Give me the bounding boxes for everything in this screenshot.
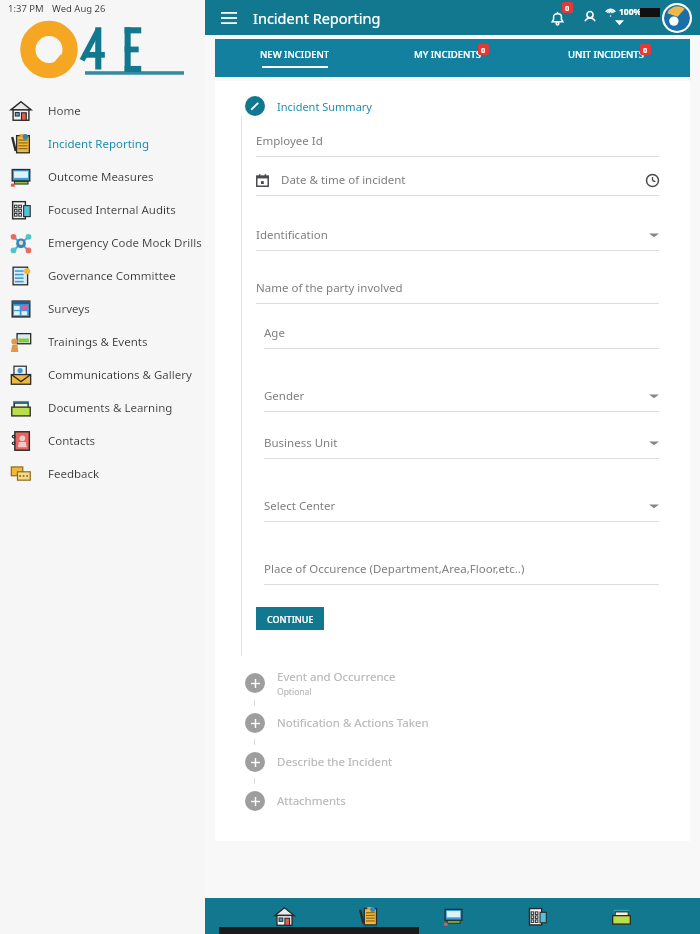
staticText: Place of Occurence (Department,Area,Floo…: [264, 561, 525, 577]
button[interactable]: Emergency Code Mock Drills: [0, 226, 205, 259]
staticText: Name of the party involved: [256, 280, 403, 296]
staticText: Select Center: [264, 498, 336, 514]
button[interactable]: Attachments: [226, 784, 677, 817]
button[interactable]: Notification & Actions Taken: [226, 706, 677, 739]
button[interactable]: Surveys: [0, 292, 205, 325]
button[interactable]: UNIT INCIDENTS: [532, 39, 690, 77]
staticText: NEW INCIDENT: [260, 48, 330, 61]
button[interactable]: Trainings & Events: [0, 325, 205, 358]
staticText: 0: [565, 3, 570, 13]
button[interactable]: Gender: [264, 385, 659, 412]
button[interactable]: Place of Occurence (Department,Area,Floo…: [264, 558, 659, 585]
staticText: Governance Committee: [48, 268, 176, 284]
button[interactable]: Home: [0, 94, 205, 127]
staticText: 100%: [619, 6, 642, 18]
staticText: Outcome Measures: [48, 169, 154, 185]
button[interactable]: Age: [264, 322, 659, 349]
button[interactable]: Focused Internal Audits: [520, 899, 554, 933]
staticText: Identification: [256, 227, 328, 243]
staticText: Attachments: [277, 793, 346, 809]
staticText: Home: [48, 103, 81, 119]
staticText: Documents & Learning: [48, 400, 173, 416]
staticText: Contacts: [48, 433, 96, 449]
staticText: Incident Reporting: [48, 136, 150, 152]
button[interactable]: Communications & Gallery: [0, 358, 205, 391]
staticText: Surveys: [48, 301, 90, 317]
staticText: 1:37 PM: [8, 2, 44, 15]
button[interactable]: Select Center: [264, 495, 659, 522]
staticText: 0: [643, 45, 648, 55]
staticText: Wed Aug 26: [52, 2, 106, 15]
staticText: Feedback: [48, 466, 100, 482]
staticText: Optional: [277, 686, 312, 698]
button[interactable]: Describe the Incident: [226, 745, 677, 778]
staticText: Business Unit: [264, 435, 338, 451]
staticText: Gender: [264, 388, 305, 404]
button[interactable]: Feedback: [0, 457, 205, 490]
button[interactable]: Notifications: [543, 4, 571, 32]
button[interactable]: Account: [577, 5, 603, 31]
button[interactable]: Event and Occurrence: [226, 666, 677, 700]
staticText: Age: [264, 325, 285, 341]
staticText: MY INCIDENTS: [414, 48, 482, 61]
button[interactable]: Open navigation menu: [217, 6, 241, 30]
button[interactable]: CONTINUE: [256, 607, 324, 630]
staticText: Incident Reporting: [253, 8, 381, 28]
button[interactable]: Contacts: [0, 424, 205, 457]
staticText: Incident Summary: [277, 99, 372, 114]
button[interactable]: Outcome Measures: [436, 899, 470, 933]
button[interactable]: Date & time of incident: [256, 169, 659, 196]
staticText: UNIT INCIDENTS: [568, 48, 644, 61]
staticText: 0: [481, 45, 486, 55]
button[interactable]: Business Unit: [264, 432, 659, 459]
button[interactable]: Name of the party involved: [256, 277, 659, 304]
button[interactable]: Documents & Learning: [0, 391, 205, 424]
staticText: Describe the Incident: [277, 754, 393, 770]
staticText: Notification & Actions Taken: [277, 715, 429, 731]
button[interactable]: Employee Id: [256, 130, 659, 157]
button[interactable]: Outcome Measures: [0, 160, 205, 193]
staticText: Employee Id: [256, 133, 323, 149]
button[interactable]: Governance Committee: [0, 259, 205, 292]
staticText: Emergency Code Mock Drills: [48, 235, 202, 251]
button[interactable]: NEW INCIDENT: [215, 39, 374, 77]
button[interactable]: Documents: [604, 899, 638, 933]
button[interactable]: Profile: [662, 3, 692, 33]
button[interactable]: Focused Internal Audits: [0, 193, 205, 226]
staticText: Focused Internal Audits: [48, 202, 176, 218]
button[interactable]: Incident Reporting: [0, 127, 205, 160]
staticText: Event and Occurrence: [277, 669, 396, 685]
staticText: Trainings & Events: [48, 334, 148, 350]
button[interactable]: Incident Summary: [226, 96, 677, 116]
staticText: Date & time of incident: [281, 172, 406, 188]
staticText: CONTINUE: [267, 613, 314, 625]
button[interactable]: MY INCIDENTS: [374, 39, 532, 77]
button[interactable]: Identification: [256, 224, 659, 251]
staticText: Communications & Gallery: [48, 367, 192, 383]
button[interactable]: Home: [267, 899, 301, 933]
button[interactable]: Incident Reporting: [351, 899, 385, 933]
